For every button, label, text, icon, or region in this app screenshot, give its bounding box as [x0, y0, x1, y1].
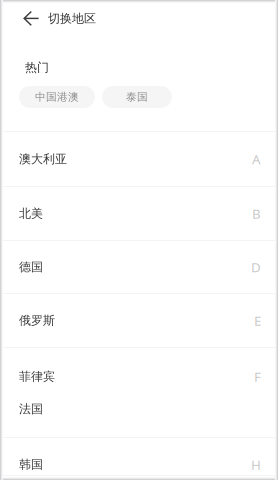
- button[interactable]: Back: [15, 1, 48, 35]
- staticText: 德国: [19, 260, 43, 274]
- staticText: F: [254, 368, 261, 385]
- button[interactable]: 北美: [0, 187, 278, 240]
- button[interactable]: 菲律宾: [0, 348, 278, 393]
- button[interactable]: 泰国: [102, 86, 172, 108]
- staticText: 澳大利亚: [19, 152, 67, 166]
- staticText: 北美: [19, 206, 43, 221]
- staticText: B: [252, 205, 261, 222]
- staticText: D: [251, 258, 261, 276]
- staticText: 法国: [19, 402, 43, 416]
- button[interactable]: 德国: [0, 241, 278, 293]
- staticText: E: [254, 312, 261, 329]
- button[interactable]: 中国港澳: [19, 86, 95, 108]
- staticText: 切换地区: [48, 11, 96, 26]
- button[interactable]: 俄罗斯: [0, 294, 278, 347]
- staticText: 俄罗斯: [19, 313, 55, 328]
- staticText: A: [252, 150, 261, 168]
- staticText: 菲律宾: [19, 369, 55, 384]
- staticText: H: [251, 456, 261, 473]
- button[interactable]: 韩国: [0, 438, 278, 475]
- staticText: 泰国: [126, 90, 148, 103]
- button[interactable]: 澳大利亚: [0, 132, 278, 186]
- staticText: 热门: [25, 60, 49, 75]
- staticText: 韩国: [19, 457, 43, 472]
- staticText: 中国港澳: [35, 90, 79, 103]
- button[interactable]: 法国: [0, 393, 278, 437]
